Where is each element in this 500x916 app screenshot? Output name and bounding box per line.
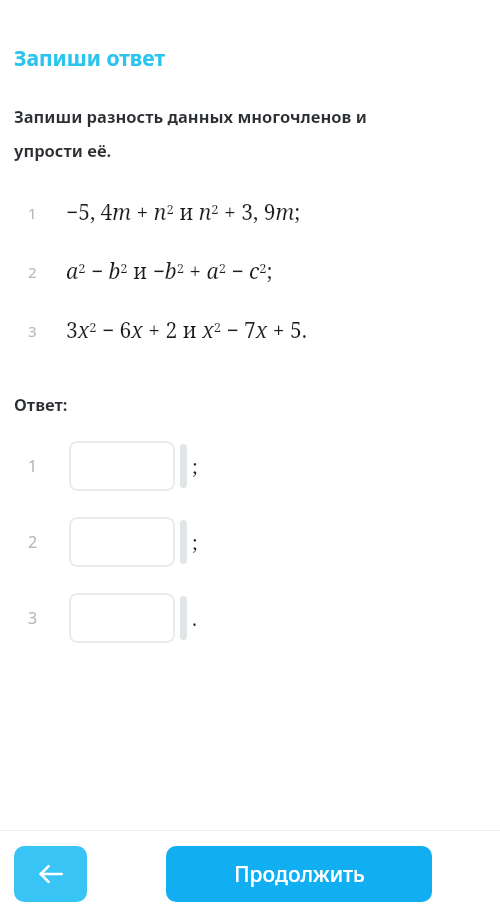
staticText: Запиши ответ xyxy=(14,44,166,73)
staticText: ; xyxy=(192,529,198,556)
staticText: . xyxy=(192,605,197,632)
staticText: 1 xyxy=(28,203,66,223)
button[interactable]: Ответ 1 xyxy=(69,441,175,491)
button[interactable]: Ответ 3 xyxy=(69,593,175,643)
staticText: 1 xyxy=(28,455,69,477)
staticText: 3 xyxy=(28,321,66,341)
staticText: Запиши разность данных многочленов и упр… xyxy=(14,105,500,162)
staticText: 3x2 − 6x + 2 и x2 − 7x + 5. xyxy=(66,316,307,345)
button[interactable]: Ответ 2 xyxy=(69,517,175,567)
button[interactable]: Назад xyxy=(14,846,87,902)
staticText: a2 − b2 и −b2 + a2 − c2; xyxy=(66,257,273,286)
staticText: 2 xyxy=(28,262,66,282)
staticText: 3 xyxy=(28,607,69,629)
button[interactable]: Продолжить xyxy=(166,846,432,902)
staticText: Ответ: xyxy=(14,393,68,415)
staticText: −5, 4m + n2 и n2 + 3, 9m; xyxy=(66,198,301,227)
staticText: ; xyxy=(192,453,198,480)
staticText: 2 xyxy=(28,531,69,553)
staticText: Продолжить xyxy=(234,860,365,889)
